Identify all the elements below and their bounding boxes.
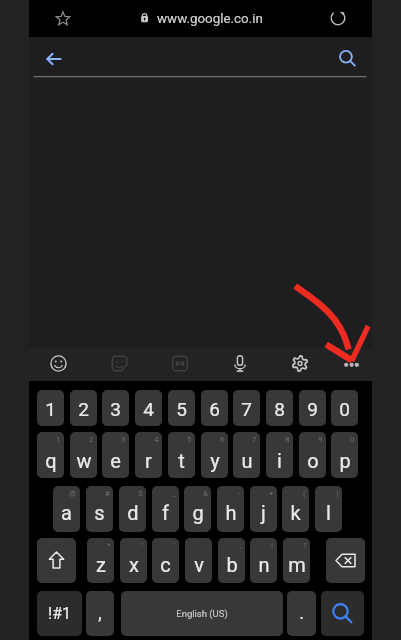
button[interactable]: ,: [86, 591, 114, 636]
staticText: .: [299, 602, 304, 623]
staticText: 2: [89, 435, 94, 444]
button[interactable]: -: [217, 486, 244, 532]
staticText: u: [241, 449, 253, 472]
button[interactable]: 0: [331, 432, 358, 478]
staticText: p: [339, 449, 351, 472]
button[interactable]: 5: [168, 390, 195, 426]
staticText: -: [238, 489, 241, 498]
staticText: 3: [121, 435, 126, 444]
button[interactable]: 7: [233, 390, 260, 426]
button[interactable]: Bookmark: [48, 4, 78, 34]
button[interactable]: 4: [135, 432, 162, 478]
staticText: r: [145, 449, 152, 472]
button[interactable]: 5: [168, 432, 195, 478]
staticText: ?: [303, 541, 307, 550]
staticText: o: [307, 449, 319, 472]
button[interactable]: (: [282, 486, 309, 532]
staticText: i: [277, 449, 282, 472]
button[interactable]: !#1: [37, 591, 82, 636]
button[interactable]: 2: [70, 390, 97, 426]
button[interactable]: Settings: [285, 350, 316, 379]
button[interactable]: ": [120, 538, 147, 583]
button[interactable]: Stickers: [104, 350, 135, 379]
staticText: x: [129, 553, 139, 576]
button[interactable]: +: [250, 486, 277, 532]
button[interactable]: 8: [266, 390, 293, 426]
staticText: *: [107, 541, 111, 550]
button[interactable]: _: [152, 486, 179, 532]
staticText: c: [160, 553, 171, 576]
button[interactable]: Search: [321, 591, 364, 636]
staticText: e: [110, 449, 121, 472]
button[interactable]: ): [315, 486, 342, 532]
button[interactable]: Reload: [322, 4, 352, 34]
button[interactable]: 6: [201, 390, 228, 426]
staticText: www.google.co.in: [157, 11, 263, 27]
staticText: 4: [154, 435, 159, 444]
staticText: 6: [220, 435, 225, 444]
staticText: 5: [176, 398, 187, 420]
staticText: _: [172, 489, 176, 498]
staticText: a: [61, 501, 72, 524]
button[interactable]: Search: [329, 40, 367, 78]
button[interactable]: GIF: [165, 350, 196, 379]
button[interactable]: 7: [233, 432, 260, 478]
button[interactable]: Voice input: [225, 350, 256, 379]
staticText: +: [269, 489, 274, 498]
button[interactable]: 8: [266, 432, 293, 478]
button[interactable]: *: [87, 538, 114, 583]
staticText: q: [45, 449, 57, 472]
button[interactable]: Emoji: [43, 350, 74, 379]
button[interactable]: More options: [336, 350, 367, 379]
staticText: :: [207, 541, 209, 550]
button[interactable]: !: [250, 538, 277, 583]
button[interactable]: 1: [37, 390, 64, 426]
staticText: 0: [339, 398, 350, 420]
button[interactable]: ;: [218, 538, 245, 583]
staticText: 0: [350, 435, 355, 444]
staticText: ': [174, 541, 176, 550]
button[interactable]: 2: [70, 432, 97, 478]
button[interactable]: ': [152, 538, 179, 583]
staticText: 9: [318, 435, 323, 444]
staticText: b: [226, 553, 238, 576]
button[interactable]: 1: [37, 432, 64, 478]
staticText: n: [258, 553, 270, 576]
button[interactable]: 6: [201, 432, 228, 478]
staticText: 4: [143, 398, 154, 420]
button[interactable]: &: [184, 486, 211, 532]
staticText: 3: [110, 398, 121, 420]
staticText: h: [225, 501, 237, 524]
staticText: f: [162, 501, 169, 524]
staticText: ): [336, 489, 339, 498]
button[interactable]: Shift: [37, 538, 76, 583]
button[interactable]: :: [185, 538, 212, 583]
staticText: 8: [274, 398, 285, 420]
staticText: 6: [209, 398, 220, 420]
button[interactable]: $: [119, 486, 146, 532]
button[interactable]: ?: [283, 538, 310, 583]
button[interactable]: 3: [102, 390, 129, 426]
button[interactable]: 9: [299, 390, 326, 426]
button[interactable]: 4: [135, 390, 162, 426]
button[interactable]: .: [287, 591, 316, 636]
button[interactable]: Back: [35, 40, 73, 78]
staticText: g: [192, 501, 204, 524]
staticText: l: [326, 501, 331, 524]
staticText: 1: [45, 398, 56, 420]
staticText: z: [96, 553, 106, 576]
button[interactable]: Backspace: [326, 538, 365, 583]
button[interactable]: 0: [331, 390, 358, 426]
staticText: m: [288, 553, 306, 576]
staticText: k: [290, 501, 301, 524]
button[interactable]: @: [53, 486, 80, 532]
button[interactable]: 9: [299, 432, 326, 478]
staticText: 7: [241, 398, 252, 420]
staticText: ;: [240, 541, 242, 550]
button[interactable]: #: [86, 486, 113, 532]
button[interactable]: 3: [102, 432, 129, 478]
staticText: #: [105, 489, 110, 498]
staticText: $: [138, 489, 143, 498]
button[interactable]: English (US): [121, 591, 283, 636]
staticText: 9: [307, 398, 318, 420]
